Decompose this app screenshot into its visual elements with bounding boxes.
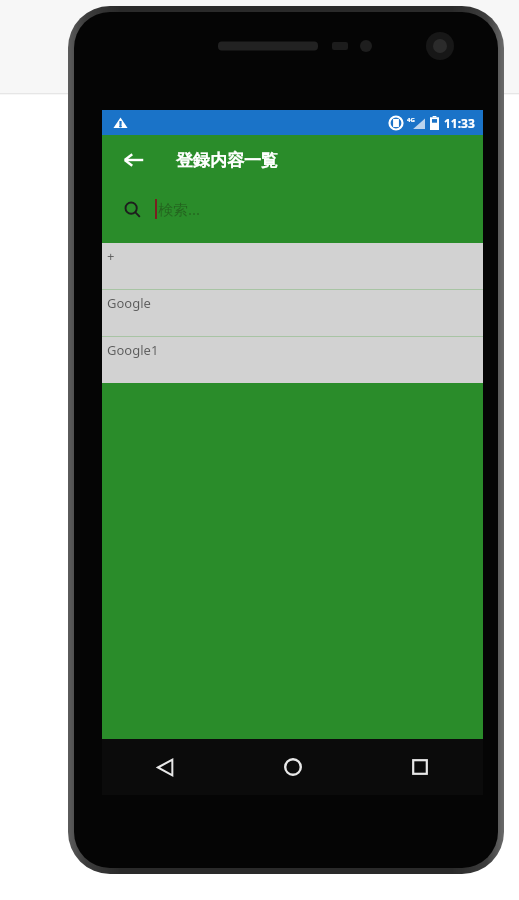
button[interactable]: Home: [229, 739, 356, 795]
staticText: +: [107, 247, 115, 265]
staticText: 4G: [407, 116, 415, 124]
staticText: 登録内容一覧: [176, 150, 278, 171]
staticText: Google1: [107, 341, 159, 359]
button[interactable]: Recents: [356, 739, 483, 795]
button[interactable]: Google: [102, 290, 483, 336]
staticText: 11:33: [444, 115, 475, 131]
button[interactable]: Back: [114, 140, 154, 180]
staticText: Google: [107, 294, 151, 312]
staticText: 検索...: [158, 199, 201, 219]
button[interactable]: 検索...: [102, 185, 483, 233]
button[interactable]: Google1: [102, 337, 483, 383]
button[interactable]: Back: [102, 739, 229, 795]
